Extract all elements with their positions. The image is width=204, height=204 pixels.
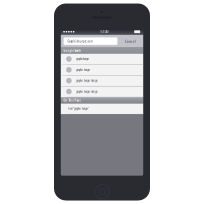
- button[interactable]: graphic burger design: [61, 75, 143, 86]
- staticText: Graphicburger.com: [67, 39, 92, 43]
- button[interactable]: graphicburger: [61, 54, 143, 65]
- staticText: Cancel: [125, 38, 136, 44]
- staticText: On This Page: [63, 98, 80, 102]
- staticText: 9:41 AM: [100, 30, 108, 34]
- staticText: Google Search: [63, 49, 81, 53]
- staticText: graphicburger: [76, 57, 89, 61]
- button[interactable]: Cancel: [123, 35, 138, 47]
- button[interactable]: graphic burger: [61, 65, 143, 75]
- button[interactable]: graphic burger design: [61, 86, 143, 97]
- staticText: graphic burger design: [76, 89, 97, 93]
- button[interactable]: Find “graphic burger”: [61, 103, 143, 114]
- staticText: graphic burger design: [76, 79, 97, 83]
- staticText: Find “graphic burger”: [68, 107, 89, 111]
- staticText: graphic burger: [76, 68, 90, 72]
